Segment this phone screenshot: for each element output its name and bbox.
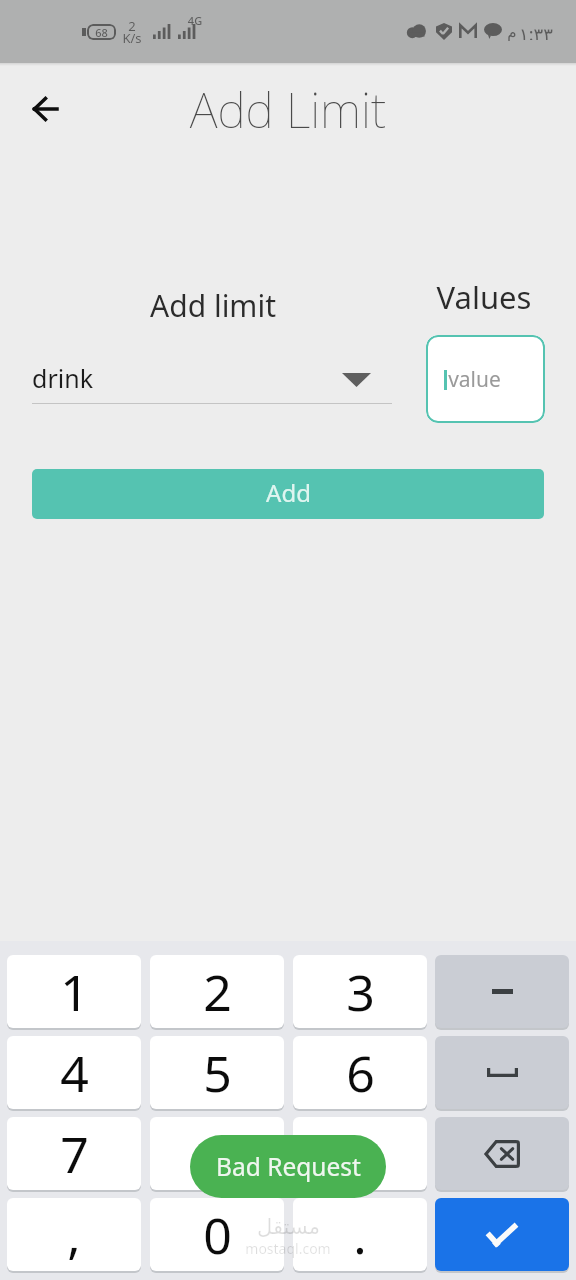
button[interactable]: 1	[7, 955, 141, 1028]
button[interactable]: Minus	[435, 955, 569, 1028]
button[interactable]: drink	[32, 355, 392, 401]
staticText: ١:٣٣	[519, 22, 553, 40]
button[interactable]: Add	[32, 469, 544, 519]
staticText: Add Limit	[88, 77, 488, 142]
button[interactable]: 3	[293, 955, 427, 1028]
button[interactable]: value	[426, 335, 545, 423]
staticText: 4G	[185, 13, 205, 28]
button[interactable]: ,	[7, 1198, 141, 1271]
button[interactable]: Space	[435, 1036, 569, 1109]
staticText: value	[448, 365, 501, 394]
staticText: 68	[95, 25, 108, 40]
staticText: مستقل	[257, 1215, 320, 1239]
button[interactable]: 6	[293, 1036, 427, 1109]
staticText: 2	[121, 17, 143, 35]
button[interactable]: Bad Request	[190, 1135, 386, 1198]
staticText: K/s	[121, 29, 143, 47]
staticText: 1	[60, 958, 89, 1026]
staticText: 6	[346, 1039, 375, 1107]
button[interactable]: 9	[293, 1117, 427, 1190]
staticText: 0	[203, 1201, 232, 1269]
staticText: Values	[424, 276, 544, 318]
staticText: .	[353, 1201, 367, 1269]
staticText: Add limit	[93, 285, 333, 326]
button[interactable]: .	[293, 1198, 427, 1271]
staticText: drink	[32, 361, 93, 395]
staticText: 8	[203, 1120, 232, 1188]
staticText: 7	[60, 1120, 89, 1188]
button[interactable]: 8	[150, 1117, 284, 1190]
button[interactable]: 4	[7, 1036, 141, 1109]
staticText: mostaql.com	[245, 1239, 331, 1258]
staticText: Add	[266, 476, 311, 509]
staticText: ,	[67, 1201, 81, 1269]
button[interactable]: 0	[150, 1198, 284, 1271]
button[interactable]: 2	[150, 955, 284, 1028]
staticText: م	[507, 23, 517, 40]
staticText: 4	[60, 1039, 89, 1107]
staticText: 9	[346, 1120, 375, 1188]
staticText: 2	[203, 958, 232, 1026]
button[interactable]: 5	[150, 1036, 284, 1109]
button[interactable]: Back	[19, 83, 71, 135]
button[interactable]: 7	[7, 1117, 141, 1190]
button[interactable]: Done	[435, 1198, 569, 1271]
button[interactable]: Backspace	[435, 1117, 569, 1190]
staticText: 3	[346, 958, 375, 1026]
staticText: 5	[203, 1039, 232, 1107]
staticText: Bad Request	[216, 1150, 361, 1183]
